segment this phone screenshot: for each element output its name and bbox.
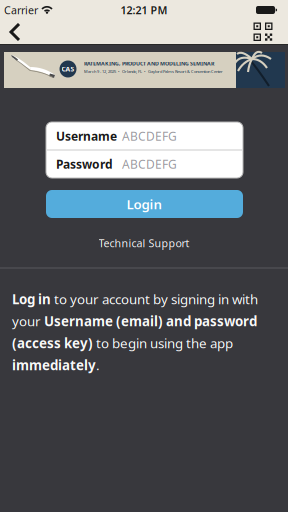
button[interactable]: Password [56, 150, 243, 177]
staticText: Log in to your account by signing in wit… [12, 290, 258, 308]
staticText: ABCDEFG [122, 128, 177, 144]
button[interactable]: Technical Support [98, 236, 189, 250]
staticText: your Username (email) and password [12, 312, 257, 330]
staticText: Password [56, 156, 113, 172]
staticText: ABCDEFG [122, 156, 177, 172]
staticText: March 9 - 12, 2025 • Orlando, FL • Gaylo… [84, 69, 223, 74]
staticText: RATEMAKING, PRODUCT AND MODELING SEMINAR [84, 60, 214, 67]
button[interactable]: Ratemaking, Product and Modeling Seminar [4, 52, 285, 88]
button[interactable]: Login [46, 190, 243, 218]
staticText: (access key) to begin using the app [12, 334, 233, 352]
staticText: CAS [61, 65, 74, 73]
button[interactable]: Scan QR code [253, 22, 274, 41]
staticText: immediately. [12, 356, 100, 374]
button[interactable]: Back [7, 21, 23, 42]
staticText: 12:21 PM [120, 3, 167, 17]
button[interactable]: Username [56, 122, 243, 149]
staticText: Technical Support [98, 236, 189, 250]
staticText: Username [56, 128, 117, 144]
staticText: Carrier [4, 3, 38, 17]
staticText: Login [126, 195, 162, 213]
